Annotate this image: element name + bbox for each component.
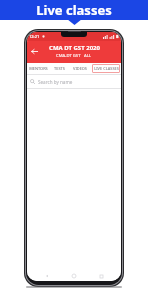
staticText: LIVE CLASSES [94,66,119,71]
staticText: VIDEOS [73,66,87,71]
staticText: ALL [84,53,92,59]
button[interactable]: Search by name [27,75,121,88]
staticText: Search by name [38,79,73,85]
button[interactable]: TESTS [50,63,69,74]
staticText: 12:21 [29,34,40,39]
button[interactable]: Back [27,44,41,58]
staticText: CMA-DT GST [56,53,81,59]
button[interactable]: System home [67,271,81,281]
button[interactable]: LIVE CLASSES [92,64,120,73]
staticText: MENTORS [29,66,48,71]
button[interactable]: MENTORS [27,63,50,74]
button[interactable]: VIDEOS [69,63,91,74]
staticText: Live classes [36,1,112,19]
button[interactable]: System recents [94,271,108,281]
staticText: TESTS [54,66,65,71]
button[interactable]: Live classes [0,0,148,20]
button[interactable]: System back [40,271,54,281]
staticText: CMA DT GST 2020 [49,44,100,52]
